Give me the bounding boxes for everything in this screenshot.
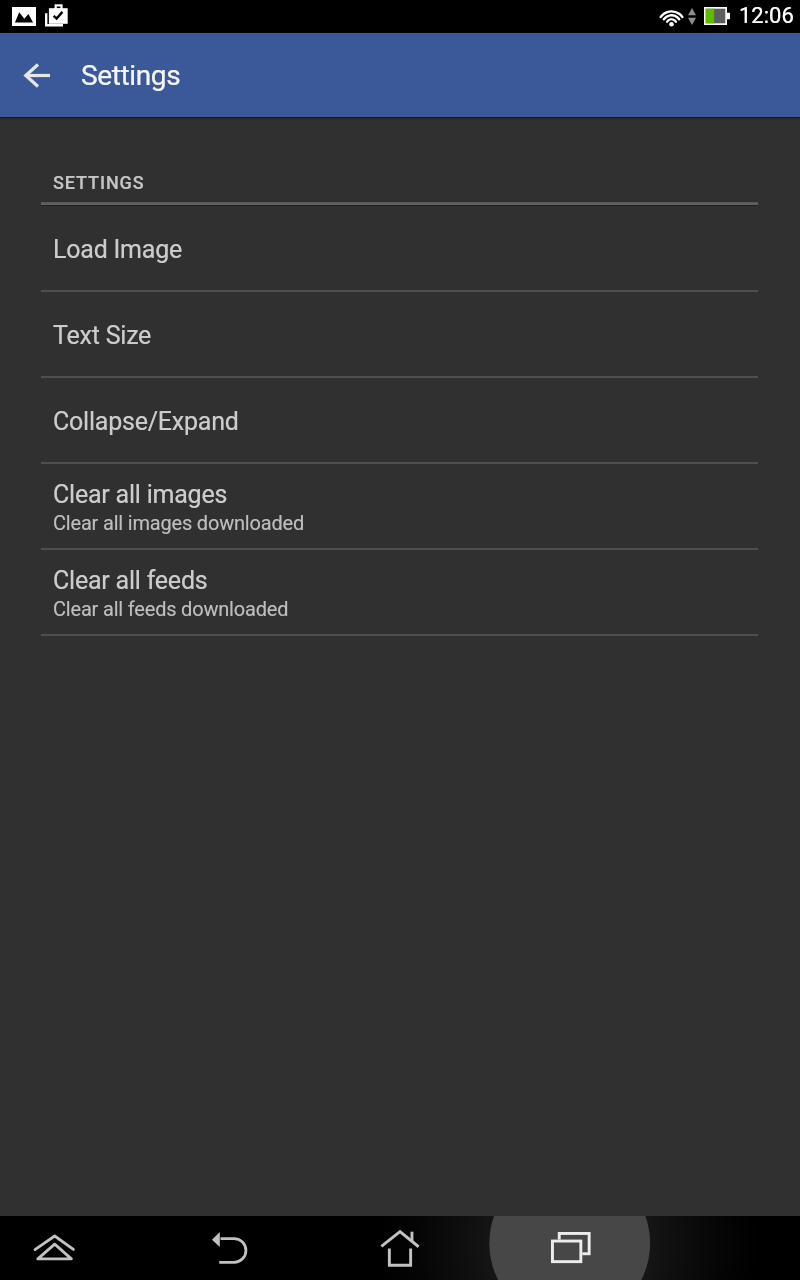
button[interactable]: Clear all feeds: [0, 550, 800, 636]
staticText: Collapse/Expand: [53, 407, 239, 436]
staticText: Clear all images downloaded: [53, 511, 305, 534]
staticText: Text Size: [53, 321, 152, 350]
staticText: Clear all feeds: [53, 566, 208, 595]
button[interactable]: Recent apps: [511, 1216, 631, 1279]
button[interactable]: Collapse/Expand: [0, 378, 800, 464]
staticText: Load Image: [53, 235, 183, 264]
button[interactable]: Back: [169, 1216, 289, 1279]
staticText: 12:06: [739, 3, 794, 29]
staticText: Clear all feeds downloaded: [53, 597, 289, 620]
button[interactable]: Navigate up: [11, 49, 63, 101]
button[interactable]: Clear all images: [0, 464, 800, 550]
button[interactable]: Load Image: [0, 206, 800, 292]
button[interactable]: Home: [340, 1216, 460, 1280]
staticText: Settings: [81, 59, 181, 92]
staticText: SETTINGS: [53, 172, 145, 193]
button[interactable]: Text Size: [0, 292, 800, 378]
staticText: Clear all images: [53, 480, 228, 509]
button[interactable]: Menu: [0, 1216, 114, 1279]
